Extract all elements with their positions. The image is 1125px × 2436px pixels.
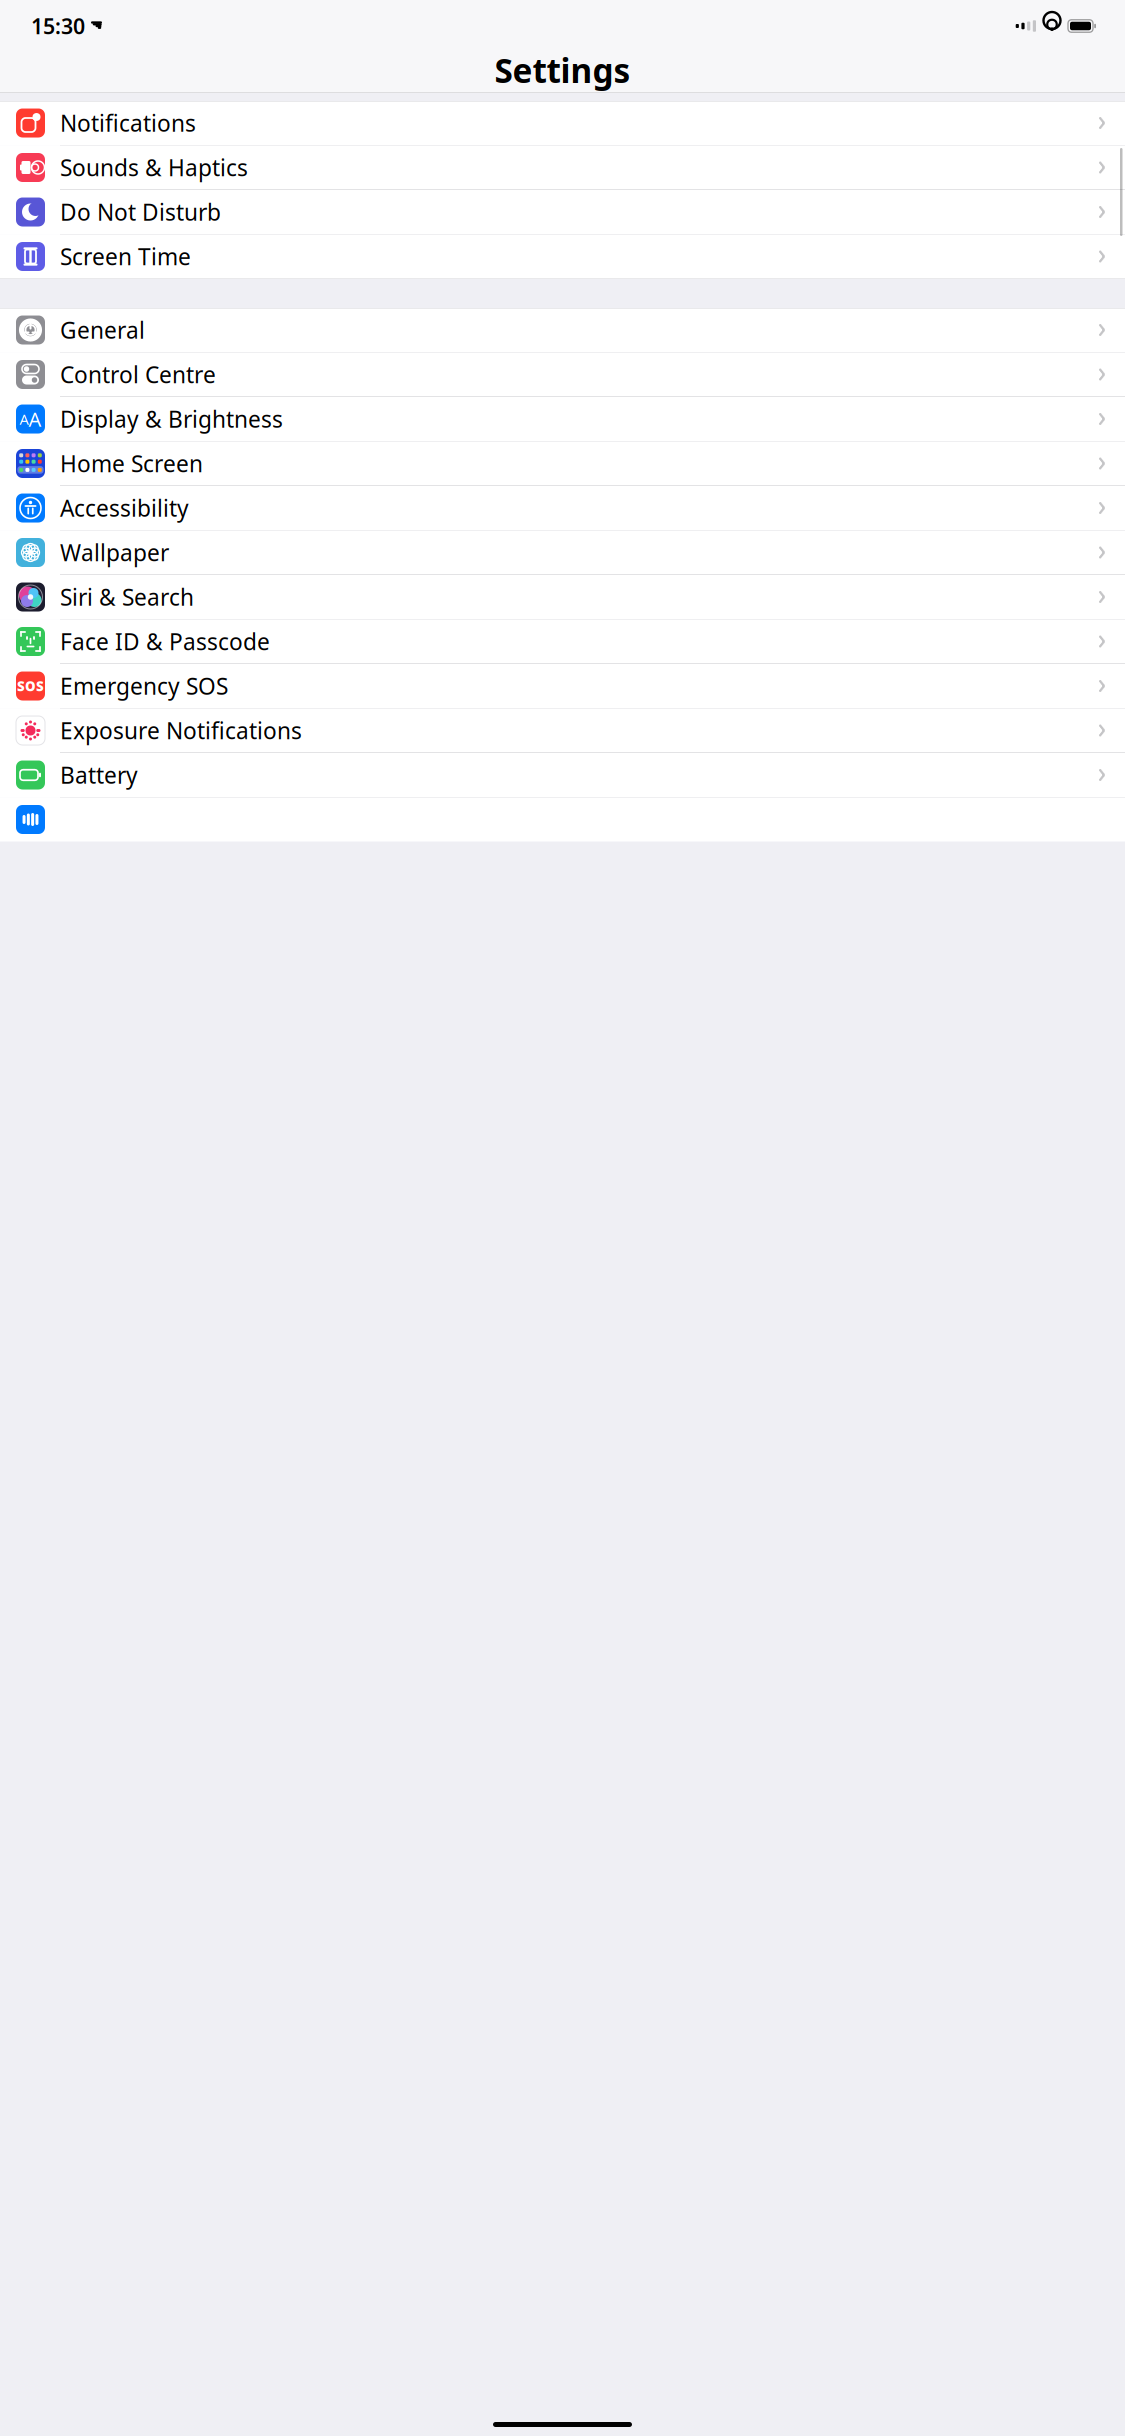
button[interactable]: Notifications: [0, 101, 1125, 145]
button[interactable]: Siri & Search: [0, 575, 1125, 619]
staticText: Accessibility: [60, 493, 189, 523]
staticText: Sounds & Haptics: [60, 152, 248, 182]
button[interactable]: A: [0, 397, 1125, 441]
staticText: Wallpaper: [60, 537, 169, 567]
button[interactable]: Battery: [0, 753, 1125, 797]
staticText: A: [28, 406, 41, 432]
staticText: 15:30: [31, 12, 85, 40]
staticText: Home Screen: [60, 448, 203, 478]
button[interactable]: Sounds & Haptics: [0, 145, 1125, 190]
staticText: Do Not Disturb: [60, 197, 221, 227]
button[interactable]: General: [0, 308, 1125, 352]
staticText: Face ID & Passcode: [60, 626, 270, 656]
button[interactable]: Face ID & Passcode: [0, 619, 1125, 664]
button[interactable]: SOS: [0, 664, 1125, 708]
staticText: General: [60, 315, 145, 345]
staticText: Battery: [60, 760, 138, 790]
staticText: Control Centre: [60, 359, 216, 389]
button[interactable]: Privacy: [0, 797, 1125, 841]
staticText: Notifications: [60, 108, 196, 138]
staticText: Siri & Search: [60, 582, 194, 612]
staticText: Screen Time: [60, 241, 191, 271]
button[interactable]: Wallpaper: [0, 530, 1125, 575]
staticText: Display & Brightness: [60, 404, 283, 434]
button[interactable]: Accessibility: [0, 486, 1125, 530]
button[interactable]: Exposure Notifications: [0, 708, 1125, 753]
button[interactable]: Do Not Disturb: [0, 190, 1125, 234]
staticText: A: [19, 409, 28, 429]
button[interactable]: Control Centre: [0, 352, 1125, 397]
button[interactable]: Home Screen: [0, 441, 1125, 486]
staticText: Emergency SOS: [60, 671, 228, 701]
staticText: Settings: [494, 48, 630, 92]
button[interactable]: Screen Time: [0, 234, 1125, 279]
staticText: Exposure Notifications: [60, 715, 302, 745]
staticText: SOS: [17, 677, 44, 695]
